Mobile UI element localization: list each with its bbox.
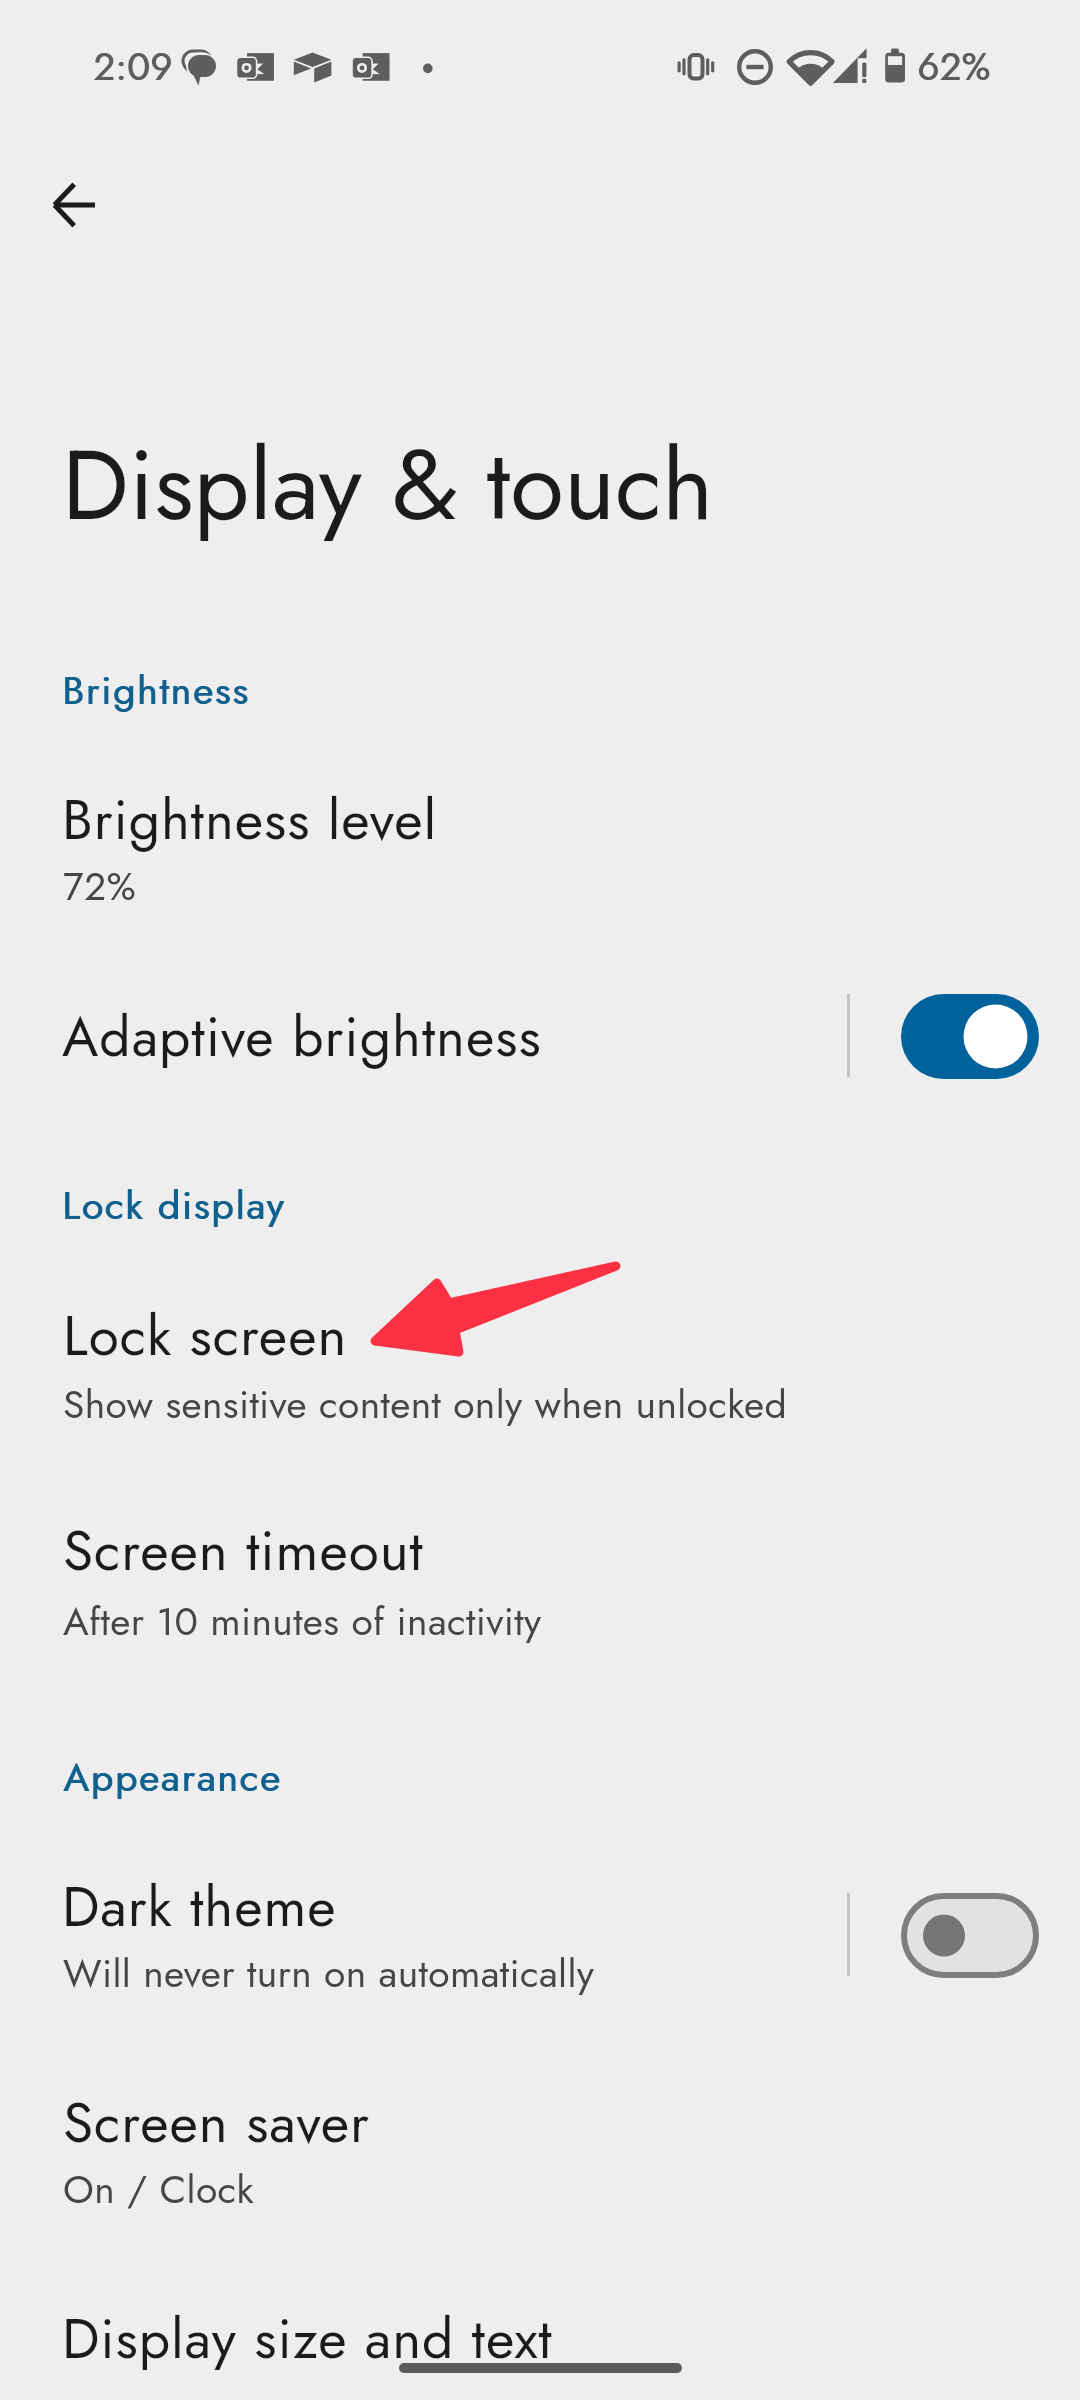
- staticText: Adaptive brightness: [62, 997, 542, 1076]
- button[interactable]: [0, 2052, 1080, 2242]
- staticText: Display size and text: [62, 2299, 553, 2378]
- staticText: Screen saver: [63, 2083, 370, 2162]
- staticText: Appearance: [63, 1749, 282, 1805]
- button[interactable]: Off: [901, 1893, 1039, 1978]
- button[interactable]: [0, 744, 1080, 930]
- staticText: Screen timeout: [63, 1511, 424, 1590]
- staticText: Show sensitive content only when unlocke…: [63, 1376, 788, 1432]
- button[interactable]: [0, 1836, 1080, 2026]
- staticText: 62%: [918, 39, 992, 94]
- staticText: Will never turn on automatically: [63, 1945, 595, 2001]
- button[interactable]: [0, 960, 1080, 1108]
- staticText: Brightness level: [62, 780, 438, 859]
- button[interactable]: [0, 1258, 1080, 1448]
- staticText: 2:09: [93, 39, 173, 94]
- button[interactable]: Navigate up: [22, 153, 126, 257]
- staticText: Brightness: [63, 662, 251, 718]
- staticText: Lock screen: [63, 1296, 348, 1375]
- button[interactable]: [0, 2266, 1080, 2396]
- staticText: 2:09: [94, 39, 174, 94]
- staticText: 62%: [917, 39, 991, 94]
- button[interactable]: On: [901, 994, 1039, 1079]
- staticText: Lock display: [63, 1177, 287, 1233]
- staticText: Appearance: [64, 1749, 283, 1805]
- staticText: Dark theme: [62, 1867, 337, 1946]
- staticText: 72%: [63, 858, 137, 914]
- staticText: Lock display: [62, 1177, 286, 1233]
- staticText: On / Clock: [63, 2161, 255, 2217]
- staticText: Brightness: [62, 662, 250, 718]
- staticText: After 10 minutes of inactivity: [63, 1593, 542, 1649]
- staticText: Display & touch: [62, 414, 714, 556]
- button[interactable]: [0, 1478, 1080, 1668]
